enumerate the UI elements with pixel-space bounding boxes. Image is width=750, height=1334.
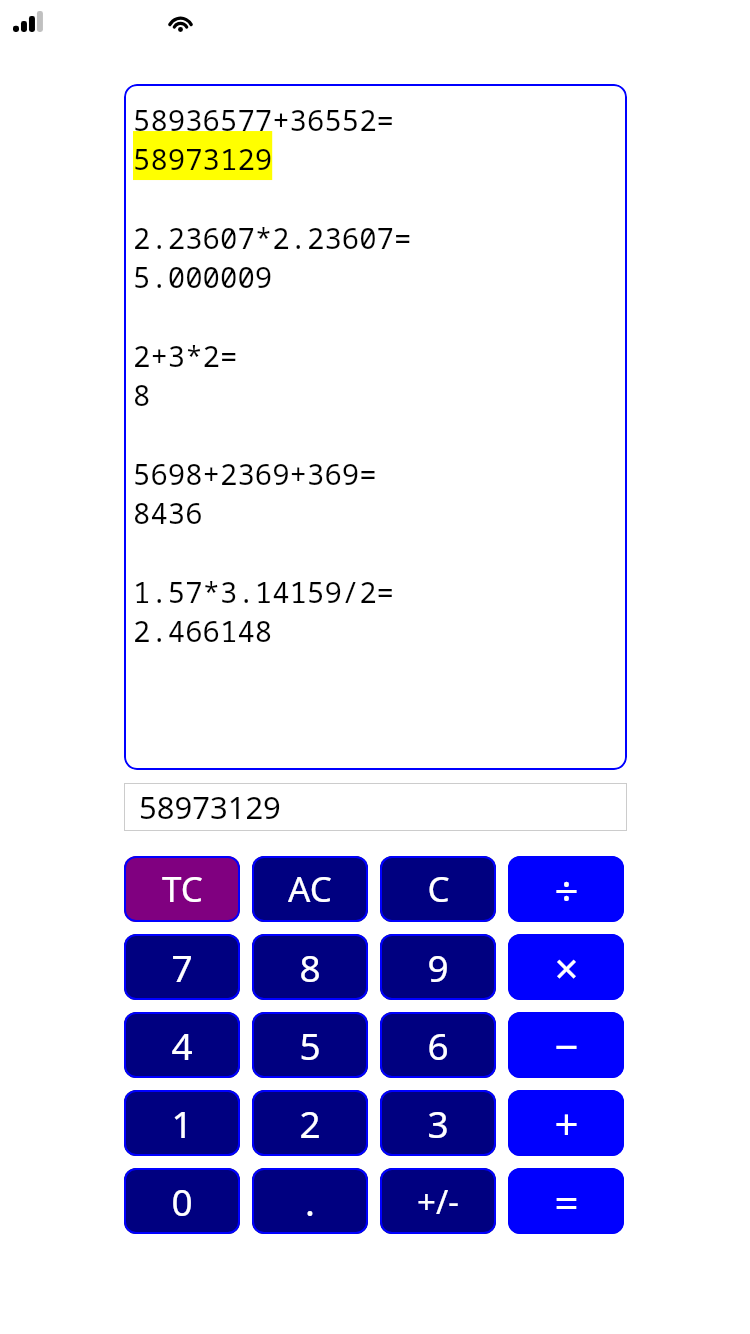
staticText: 0 xyxy=(171,1176,193,1226)
staticText: 7 xyxy=(171,942,193,992)
button[interactable]: 9 xyxy=(380,934,496,1000)
button[interactable]: 2 xyxy=(252,1090,368,1156)
staticText: 2.23607*2.23607= xyxy=(133,218,412,257)
button[interactable]: 1 xyxy=(124,1090,240,1156)
staticText: 6 xyxy=(427,1020,449,1070)
staticText: 3 xyxy=(427,1098,449,1148)
staticText: × xyxy=(554,939,579,996)
button[interactable]: 6 xyxy=(380,1012,496,1078)
button[interactable]: Multiply xyxy=(508,934,624,1000)
staticText: − xyxy=(554,1017,579,1074)
button[interactable]: Add xyxy=(508,1090,624,1156)
button[interactable]: TC xyxy=(124,856,240,922)
button[interactable]: . xyxy=(252,1168,368,1234)
button[interactable]: +/- xyxy=(380,1168,496,1234)
button[interactable]: 58973129 xyxy=(124,783,627,831)
staticText: 1 xyxy=(171,1098,193,1148)
staticText: + xyxy=(554,1095,579,1152)
button[interactable]: AC xyxy=(252,856,368,922)
staticText: +/- xyxy=(417,1179,459,1224)
button[interactable]: Divide xyxy=(508,856,624,922)
staticText: = xyxy=(554,1173,579,1230)
button[interactable]: 4 xyxy=(124,1012,240,1078)
staticText: 5 xyxy=(299,1020,321,1070)
staticText: 2+3*2= xyxy=(133,336,238,375)
staticText: 58973129 xyxy=(139,786,281,828)
button[interactable]: 8 xyxy=(252,934,368,1000)
staticText: 58936577+36552= xyxy=(133,100,395,139)
staticText: 8436 xyxy=(133,493,203,532)
button[interactable]: 0 xyxy=(124,1168,240,1234)
button[interactable]: 3 xyxy=(380,1090,496,1156)
button[interactable]: 7 xyxy=(124,934,240,1000)
button[interactable]: Subtract xyxy=(508,1012,624,1078)
staticText: 4 xyxy=(171,1020,193,1070)
button[interactable]: C xyxy=(380,856,496,922)
staticText: 58973129 xyxy=(133,139,273,178)
other: Wi-Fi xyxy=(167,11,194,32)
staticText: 5.000009 xyxy=(133,257,273,296)
staticText: AC xyxy=(288,865,332,913)
button[interactable]: Equals xyxy=(508,1168,624,1234)
staticText: C xyxy=(427,865,450,913)
button[interactable]: 58936577+36552= xyxy=(124,84,627,770)
other: Cellular signal xyxy=(13,11,43,32)
staticText: 8 xyxy=(133,375,151,414)
staticText: TC xyxy=(162,865,203,913)
staticText: 5698+2369+369= xyxy=(133,454,377,493)
staticText: 2 xyxy=(299,1098,321,1148)
staticText: 1.57*3.14159/2= xyxy=(133,572,395,611)
staticText: 2.466148 xyxy=(133,611,273,650)
staticText: ÷ xyxy=(554,861,579,918)
staticText: 8 xyxy=(299,942,321,992)
staticText: 9 xyxy=(427,942,449,992)
button[interactable]: 5 xyxy=(252,1012,368,1078)
staticText: . xyxy=(305,1176,315,1226)
